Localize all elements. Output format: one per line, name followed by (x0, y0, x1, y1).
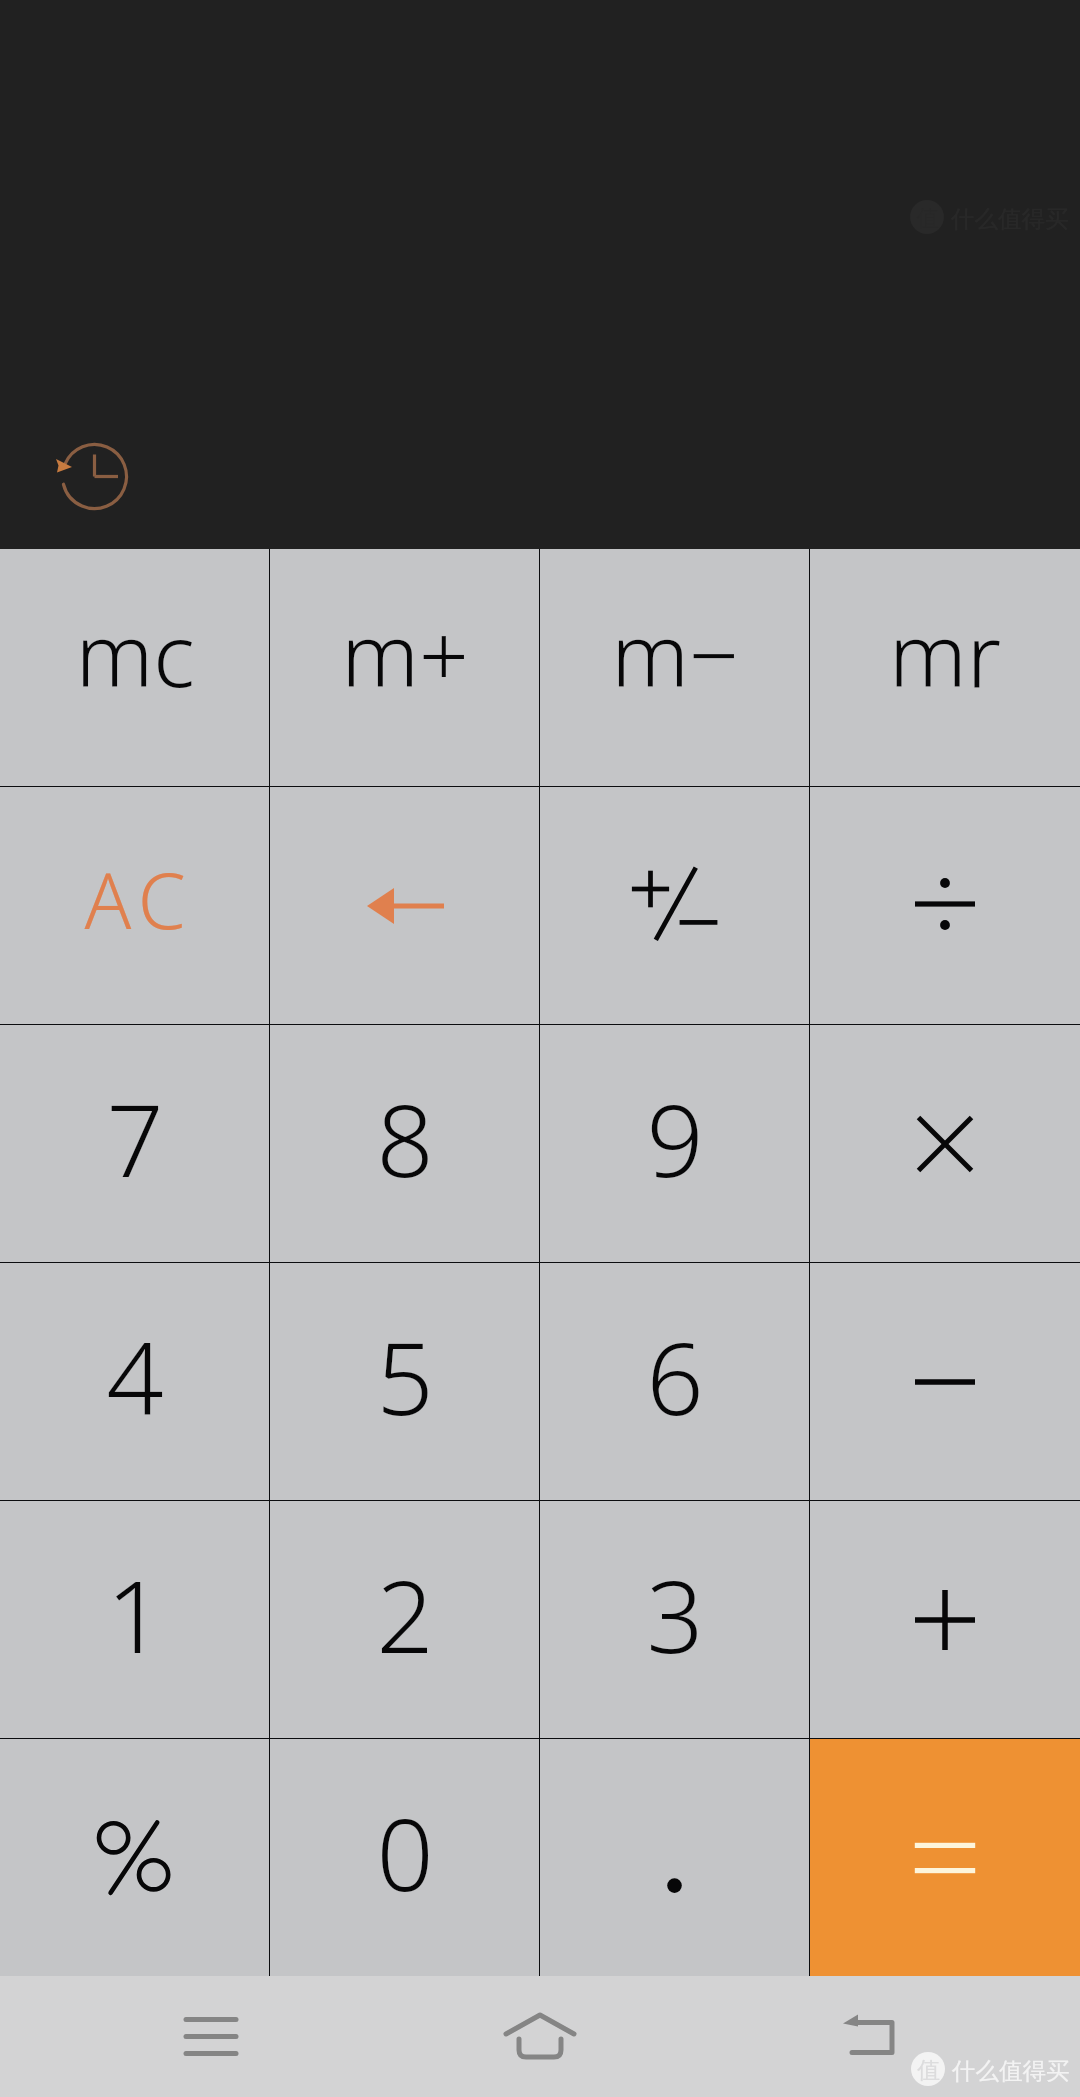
staticText: 2 (376, 1546, 434, 1682)
button[interactable]: Divide (810, 787, 1080, 1025)
button[interactable]: History (52, 434, 137, 519)
staticText: 4 (106, 1308, 164, 1444)
button[interactable]: Home (480, 1976, 600, 2097)
button[interactable]: Minus (810, 1263, 1080, 1501)
button[interactable]: Plus minus (540, 787, 810, 1025)
staticText: 5 (376, 1308, 434, 1444)
staticText: 什么值得买 (952, 2056, 1070, 2086)
button[interactable]: 3 (540, 1501, 810, 1739)
button[interactable]: Percent (0, 1739, 270, 1977)
button[interactable]: mr (810, 549, 1080, 787)
button[interactable]: 9 (540, 1025, 810, 1263)
staticText: m+ (341, 594, 469, 712)
button[interactable]: Backspace (270, 787, 540, 1025)
button[interactable]: 0 (270, 1739, 540, 1977)
staticText: mr (889, 594, 1001, 712)
button[interactable]: 2 (270, 1501, 540, 1739)
staticText: 值 (917, 2056, 940, 2085)
staticText: 3 (646, 1546, 704, 1682)
staticText: mc (75, 594, 195, 712)
button[interactable]: 7 (0, 1025, 270, 1263)
button[interactable]: 5 (270, 1263, 540, 1501)
staticText: 7 (106, 1070, 164, 1206)
button[interactable]: Decimal point (540, 1739, 810, 1977)
staticText: AC (84, 847, 194, 952)
button[interactable]: AC (0, 787, 270, 1025)
staticText: m− (611, 594, 739, 712)
button[interactable]: 6 (540, 1263, 810, 1501)
button[interactable]: Plus (810, 1501, 1080, 1739)
button[interactable]: m+ (270, 549, 540, 787)
staticText: 8 (376, 1070, 434, 1206)
staticText: 0 (376, 1784, 434, 1920)
button[interactable]: m− (540, 549, 810, 787)
button[interactable]: Back (808, 1976, 928, 2097)
button[interactable]: 8 (270, 1025, 540, 1263)
button[interactable]: 1 (0, 1501, 270, 1739)
button[interactable]: 4 (0, 1263, 270, 1501)
button[interactable]: Multiply (810, 1025, 1080, 1263)
button[interactable]: mc (0, 549, 270, 787)
button[interactable]: Menu (151, 1976, 271, 2097)
staticText: 1 (106, 1546, 164, 1682)
staticText: 9 (646, 1070, 704, 1206)
staticText: 6 (646, 1308, 704, 1444)
button[interactable]: Equals (810, 1739, 1080, 1977)
